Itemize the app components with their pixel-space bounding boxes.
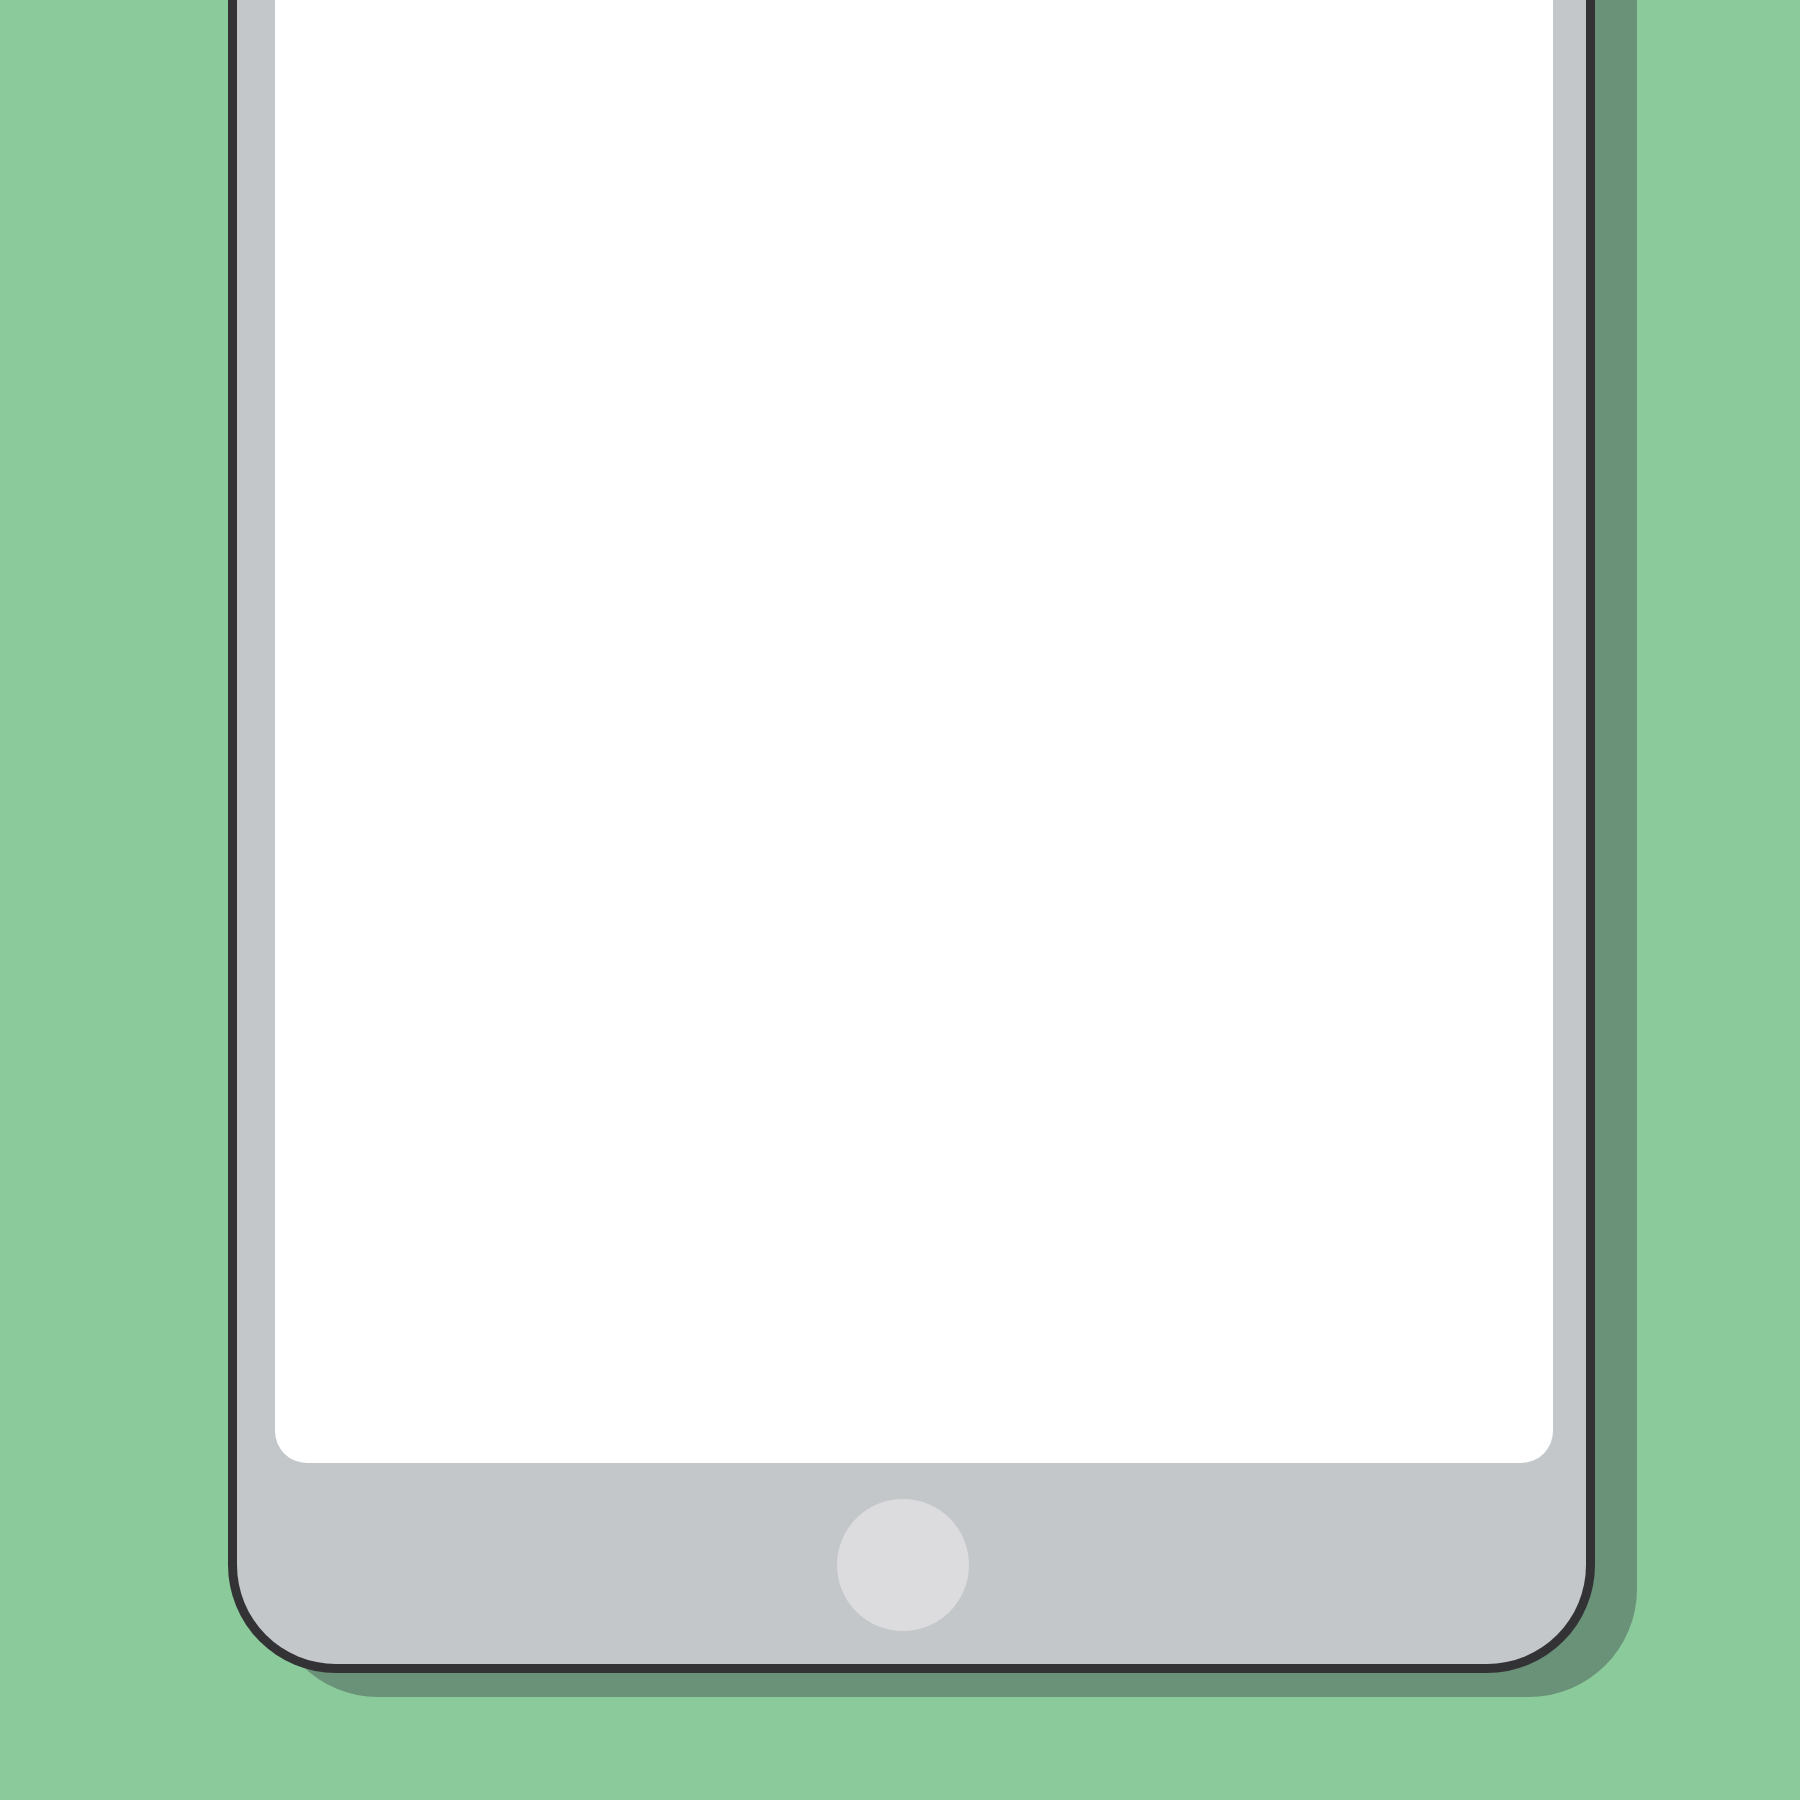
button[interactable]: Home: [837, 1499, 969, 1631]
